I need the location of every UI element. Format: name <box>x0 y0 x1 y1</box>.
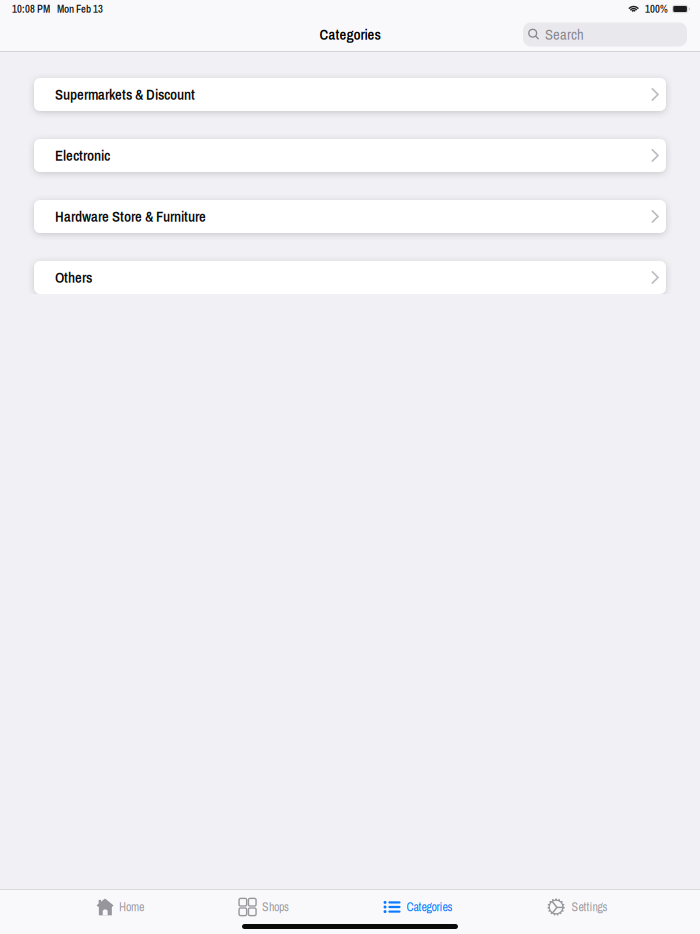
staticText: Electronic <box>55 146 110 165</box>
button[interactable]: Others <box>34 261 666 294</box>
staticText: 10:08 PM <box>12 2 50 16</box>
staticText: Hardware Store & Furniture <box>55 207 206 226</box>
button[interactable]: Settings <box>547 890 607 924</box>
staticText: Others <box>55 268 92 287</box>
staticText: Home <box>119 899 144 915</box>
staticText: Settings <box>571 899 607 915</box>
button[interactable]: Search <box>523 22 687 46</box>
staticText: Mon Feb 13 <box>57 2 103 16</box>
staticText: Categories <box>407 899 453 915</box>
staticText: 100% <box>645 2 668 16</box>
button[interactable]: Supermarkets & Discount <box>34 78 666 111</box>
staticText: Shops <box>262 899 289 915</box>
button[interactable]: Categories <box>384 890 453 924</box>
button[interactable]: Electronic <box>34 139 666 172</box>
button[interactable]: Hardware Store & Furniture <box>34 200 666 233</box>
staticText: Supermarkets & Discount <box>55 85 195 104</box>
button[interactable]: Home <box>96 890 144 924</box>
staticText: Search <box>545 25 584 44</box>
button[interactable]: Shops <box>238 890 289 924</box>
staticText: Categories <box>319 25 380 44</box>
